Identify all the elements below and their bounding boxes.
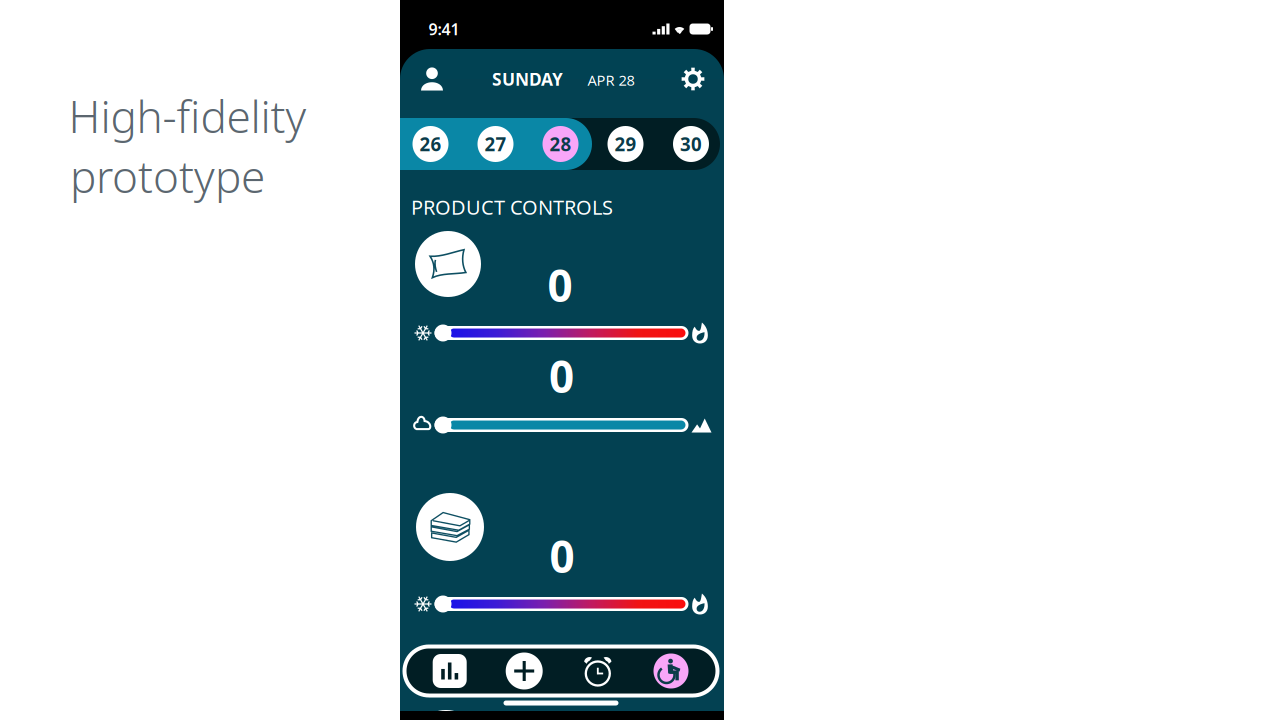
staticText: 27 bbox=[484, 132, 506, 156]
button[interactable]: Pillow bbox=[415, 231, 481, 297]
button[interactable]: Accessibility bbox=[645, 648, 697, 693]
button[interactable]: 29 bbox=[599, 118, 651, 170]
staticText: 0 bbox=[549, 527, 574, 585]
staticText: 9:41 bbox=[428, 18, 459, 40]
staticText: High-fidelity bbox=[68, 87, 306, 145]
button[interactable]: Alarm bbox=[572, 648, 624, 693]
button[interactable]: Stats bbox=[424, 648, 476, 693]
staticText: 30 bbox=[680, 132, 702, 156]
button[interactable]: 26 bbox=[404, 118, 456, 170]
staticText: 29 bbox=[614, 132, 636, 156]
button[interactable]: Add bbox=[498, 648, 550, 693]
staticText: 0 bbox=[549, 347, 574, 405]
staticText: SUNDAY bbox=[492, 67, 563, 90]
staticText: prototype bbox=[70, 147, 265, 205]
button[interactable]: 27 bbox=[469, 118, 521, 170]
staticText: 0 bbox=[547, 256, 572, 314]
button[interactable]: 30 bbox=[665, 118, 717, 170]
button[interactable]: Settings bbox=[671, 57, 715, 101]
button[interactable]: 28 bbox=[534, 118, 586, 170]
button[interactable]: Profile bbox=[410, 57, 454, 101]
staticText: 26 bbox=[419, 132, 441, 156]
button[interactable]: Blankets bbox=[416, 493, 484, 561]
staticText: APR 28 bbox=[587, 70, 634, 90]
staticText: 28 bbox=[549, 132, 571, 156]
staticText: PRODUCT CONTROLS bbox=[411, 194, 613, 220]
